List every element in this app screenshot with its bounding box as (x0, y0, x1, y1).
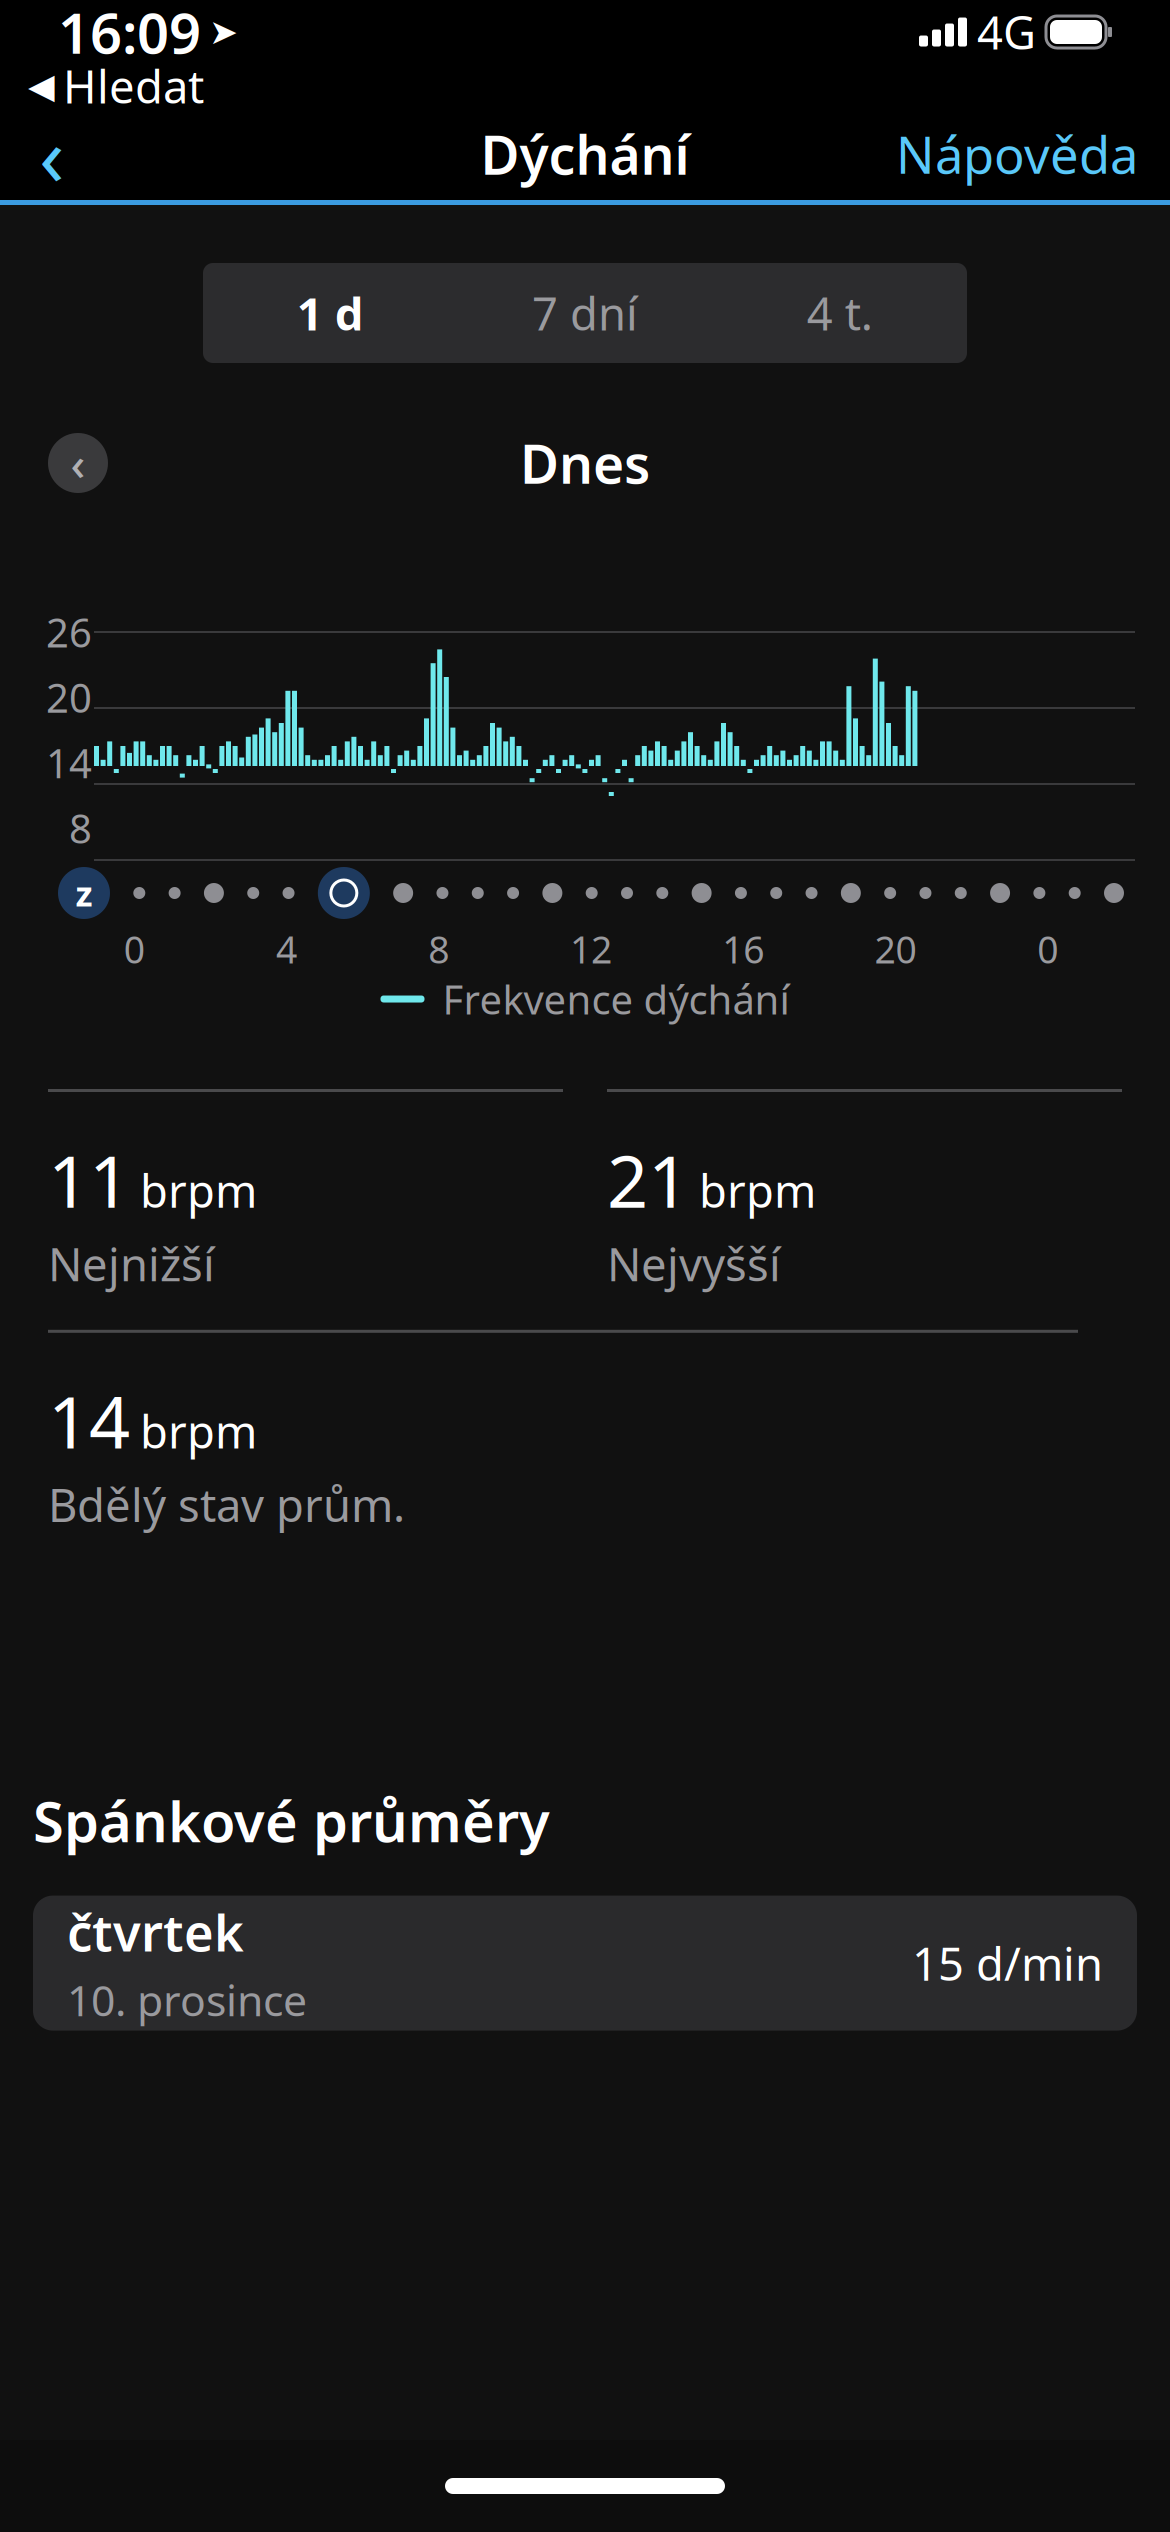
button[interactable]: Nápověda (876, 110, 1158, 198)
staticText: Bdělý stav prům. (48, 1474, 405, 1535)
staticText: ◀ (28, 66, 55, 106)
staticText: 20 (46, 671, 92, 724)
staticText: Nejvyšší (607, 1234, 781, 1294)
staticText: 16:09 (58, 0, 201, 69)
button[interactable]: 4 t. (712, 263, 967, 363)
staticText: 20 (875, 924, 917, 974)
staticText: 16 (722, 924, 764, 974)
staticText: 4G (977, 2, 1036, 62)
staticText: 4 t. (807, 283, 873, 343)
staticText: 11 (48, 1132, 130, 1228)
staticText: 14 (48, 1373, 130, 1468)
staticText: z (75, 870, 92, 916)
staticText: Nápověda (896, 120, 1138, 188)
staticText: Spánkové průměry (33, 1783, 550, 1858)
staticText: ‹ (39, 99, 65, 209)
staticText: Dýchání (480, 119, 689, 189)
staticText: 15 d/min (912, 1933, 1103, 1993)
staticText: 8 (428, 924, 449, 974)
staticText: 26 (46, 605, 92, 658)
staticText: 0 (1037, 924, 1058, 974)
staticText: 8 (69, 801, 92, 854)
staticText: Hledat (63, 56, 204, 116)
button[interactable]: 1 d (203, 263, 458, 363)
staticText: 1 d (297, 283, 364, 343)
staticText: 12 (570, 924, 612, 974)
staticText: Frekvence dýchání (442, 972, 789, 1025)
staticText: 10. prosince (67, 1971, 307, 2028)
staticText: ➤ (209, 12, 238, 52)
staticText: 14 (46, 736, 92, 789)
button[interactable]: čtvrtek (33, 1896, 1137, 2031)
staticText: brpm (699, 1160, 816, 1220)
staticText: 4 (276, 924, 297, 974)
staticText: 21 (607, 1132, 689, 1228)
staticText: 7 dní (532, 283, 638, 343)
staticText: ‹ (70, 433, 85, 493)
staticText: čtvrtek (67, 1898, 244, 1965)
button[interactable]: 7 dní (458, 263, 712, 363)
staticText: brpm (140, 1401, 257, 1461)
staticText: 0 (124, 924, 145, 974)
staticText: Dnes (520, 428, 650, 498)
button[interactable]: Předchozí den (48, 433, 108, 493)
button[interactable]: Zpět (12, 110, 92, 198)
staticText: brpm (140, 1160, 257, 1220)
staticText: Nejnižší (48, 1234, 215, 1294)
